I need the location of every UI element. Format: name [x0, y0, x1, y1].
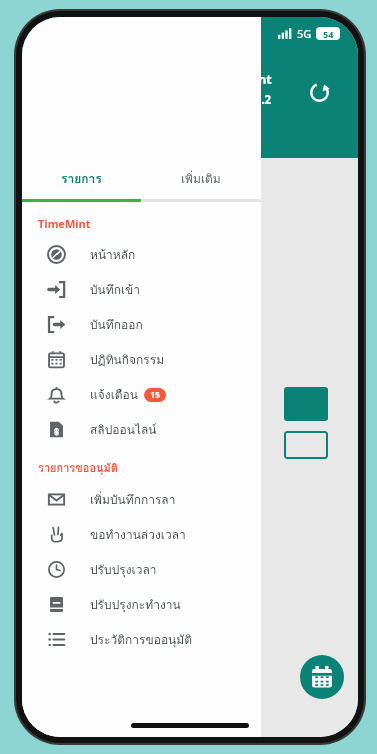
button[interactable]: หน้าหลัก [22, 237, 261, 272]
staticText: TimeMint [38, 216, 91, 231]
staticText: ปรับปรุงกะทำงาน [90, 595, 181, 614]
button[interactable]: ประวัติการขออนุมัติ [22, 622, 261, 657]
staticText: ประวัติการขออนุมัติ [90, 630, 193, 649]
staticText: รายการขออนุมัติ [38, 459, 118, 476]
button[interactable]: เพิ่มเติม [141, 158, 261, 199]
button[interactable]: บันทึกออก [22, 307, 261, 342]
button[interactable]: เพิ่มบันทึกการลา [22, 482, 261, 517]
button[interactable]: ปรับปรุงกะทำงาน [22, 587, 261, 622]
staticText: เพิ่มเติม [181, 169, 221, 188]
button[interactable]: ปฏิทินกิจกรรม [22, 342, 261, 377]
button[interactable]: Refresh [302, 75, 336, 109]
staticText: แจ้งเตือน [90, 385, 138, 404]
staticText: 54 [323, 28, 334, 40]
staticText: ปฏิทินกิจกรรม [90, 350, 165, 369]
staticText: สลิปออนไลน์ [90, 420, 157, 439]
button[interactable]: Calendar [300, 655, 344, 699]
staticText: ขอทำงานล่วงเวลา [90, 525, 186, 544]
staticText: เพิ่มบันทึกการลา [90, 490, 176, 509]
staticText: TimeMint [212, 71, 272, 88]
staticText: บันทึกออก [90, 315, 143, 334]
staticText: บันทึกเข้า [90, 280, 141, 299]
staticText: 15 [150, 389, 160, 401]
button[interactable]: ขอทำงานล่วงเวลา [22, 517, 261, 552]
button[interactable]: ปรับปรุงเวลา [22, 552, 261, 587]
staticText: หน้าหลัก [90, 245, 136, 264]
button[interactable]: รายการ [22, 158, 141, 199]
button[interactable]: แจ้งเตือน [22, 377, 261, 412]
staticText: 5G [297, 26, 312, 41]
button[interactable]: บันทึกเข้า [22, 272, 261, 307]
staticText: 3.5.2 [245, 92, 272, 108]
staticText: ปรับปรุงเวลา [90, 560, 157, 579]
staticText: รายการ [61, 169, 102, 188]
button[interactable]: สลิปออนไลน์ [22, 412, 261, 447]
